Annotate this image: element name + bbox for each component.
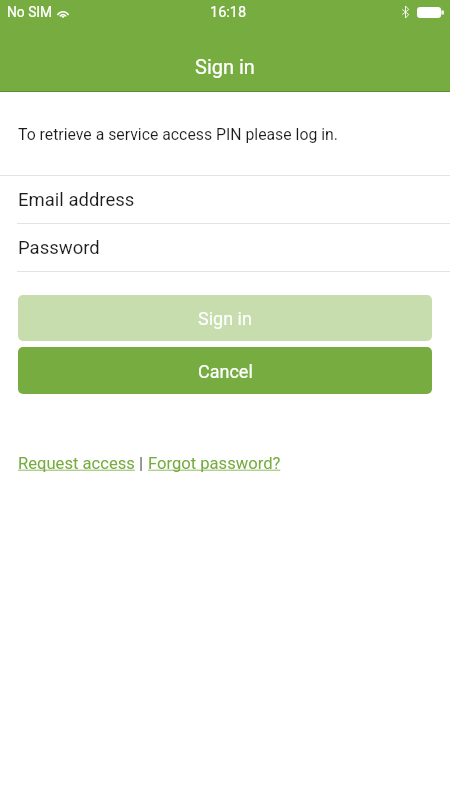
staticText: No SIM [7, 4, 53, 20]
button[interactable]: Cancel [18, 347, 432, 394]
staticText: Cancel [198, 361, 253, 382]
staticText: 16:18 [210, 4, 247, 21]
staticText: Email address [18, 189, 135, 211]
button[interactable]: Password [0, 224, 450, 271]
staticText: Forgot password? [148, 454, 281, 473]
button[interactable]: Email address [0, 176, 450, 223]
button[interactable]: Forgot password? [148, 454, 281, 473]
staticText: | [135, 454, 148, 473]
staticText: Request access [18, 454, 135, 473]
button[interactable]: Sign in [18, 295, 432, 341]
staticText: Sign in [198, 308, 252, 329]
button[interactable]: Request access [18, 454, 135, 473]
staticText: Sign in [195, 55, 255, 78]
staticText: Password [18, 237, 100, 259]
staticText: To retrieve a service access PIN please … [18, 125, 338, 144]
